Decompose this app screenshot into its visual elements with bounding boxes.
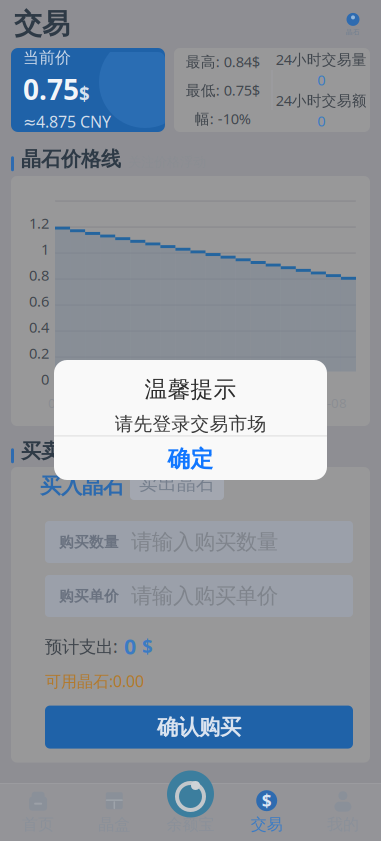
staticText: 最高: 0.84$ <box>186 52 260 71</box>
staticText: 买卖交易 <box>21 439 101 463</box>
staticText: ≈4.875 CNY <box>23 111 111 132</box>
staticText: 余额宝 <box>166 815 214 834</box>
staticText: 0.4 <box>29 317 49 337</box>
staticText: 07-12 <box>48 394 84 412</box>
staticText: 购买数量 <box>59 533 119 551</box>
button[interactable]: 余额宝 <box>152 783 229 841</box>
button[interactable]: 晶石 <box>337 9 369 39</box>
staticText: 1.2 <box>29 213 49 233</box>
staticText: 我的 <box>327 815 359 834</box>
staticText: 确认购买 <box>157 714 241 740</box>
staticText: $ <box>262 789 272 812</box>
staticText: 0.6 <box>29 291 49 311</box>
staticText: 05-09 <box>179 394 215 412</box>
staticText: 0 <box>41 369 49 389</box>
staticText: 温馨提示 <box>144 376 236 403</box>
staticText: 24小时交易额 <box>276 90 367 110</box>
staticText: 确定 <box>167 445 213 473</box>
staticText: 0.75 <box>23 71 79 108</box>
staticText: 卖出晶石 <box>139 472 215 495</box>
staticText: $ <box>142 634 153 659</box>
button[interactable]: $ <box>229 783 305 841</box>
staticText: 最低: 0.75$ <box>186 80 260 100</box>
staticText: 07-10 <box>114 394 150 412</box>
staticText: 购买单价 <box>59 587 119 605</box>
button[interactable]: 确定 <box>54 436 327 481</box>
button[interactable]: 确认购买 <box>45 706 353 749</box>
staticText: 晶盒 <box>98 815 130 834</box>
staticText: 预计支出: <box>45 635 118 658</box>
staticText: 请输入购买数量 <box>131 529 278 555</box>
staticText: 可用晶石:0.00 <box>45 670 144 691</box>
staticText: 0 <box>124 632 136 660</box>
staticText: 交易 <box>14 7 70 41</box>
staticText: 首页 <box>22 815 54 834</box>
staticText: 0 <box>317 70 325 89</box>
staticText: 0.2 <box>29 343 49 363</box>
staticText: 晶石 <box>346 28 360 36</box>
staticText: 24小时交易量 <box>276 49 367 69</box>
staticText: 1 <box>41 239 49 259</box>
staticText: 0 <box>317 111 325 130</box>
staticText: 幅: -10% <box>195 109 251 128</box>
button[interactable]: 买入晶石 <box>34 467 130 505</box>
staticText: 交易 <box>251 815 283 834</box>
staticText: 0.8 <box>29 265 49 285</box>
staticText: 01-08 <box>311 394 347 412</box>
staticText: 当前价 <box>23 48 71 68</box>
staticText: 买入晶石 <box>40 473 124 499</box>
staticText: $ <box>79 81 90 106</box>
staticText: 请输入购买单价 <box>131 583 278 609</box>
staticText: 请先登录交易市场 <box>114 412 266 435</box>
button[interactable]: 余额宝 <box>167 770 214 817</box>
button[interactable]: 卖出晶石 <box>130 467 224 500</box>
staticText: 晶石价格线 <box>21 147 121 171</box>
